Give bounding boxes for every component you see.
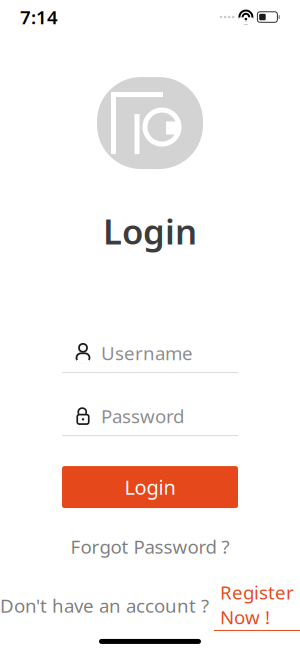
button[interactable]: Login (62, 466, 238, 508)
staticText: 7:14 (20, 5, 58, 29)
staticText: Don't have an account ? (0, 593, 209, 618)
staticText: Login (103, 208, 197, 254)
staticText: Register Now ! (220, 580, 294, 629)
staticText: Username (101, 341, 193, 365)
staticText: Password (101, 404, 184, 428)
staticText: Forgot Password ? (70, 534, 229, 559)
button[interactable]: Forgot Password ? (62, 531, 237, 562)
button[interactable]: Register Now ! (214, 580, 300, 631)
staticText: Login (124, 474, 175, 500)
